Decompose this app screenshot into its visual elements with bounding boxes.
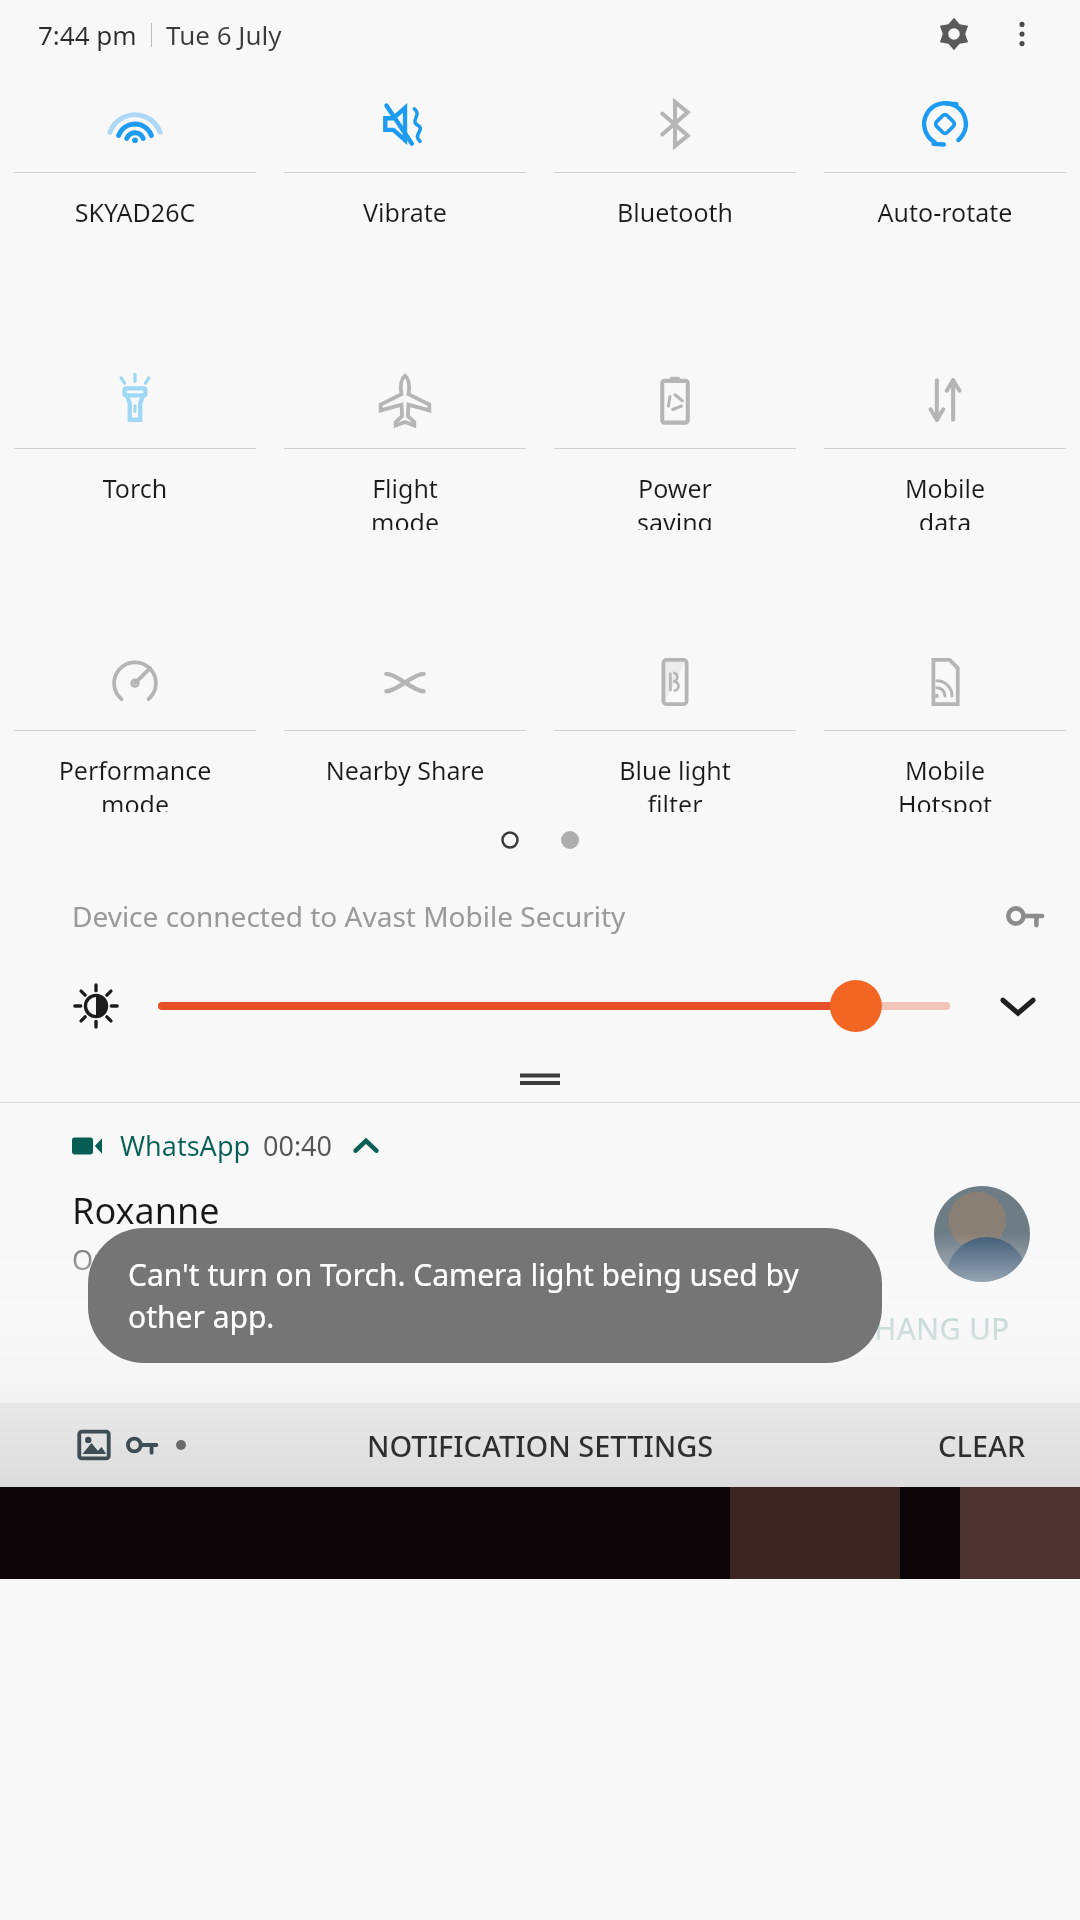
button[interactable]: Mobile Hotspot [810, 634, 1080, 812]
button[interactable]: Device connected to Avast Mobile Securit… [0, 882, 1080, 950]
staticText: WhatsApp [120, 1127, 251, 1164]
staticText: Roxanne [72, 1186, 220, 1235]
staticText: 7:44 pm [38, 17, 137, 52]
button[interactable]: Vibrate [270, 76, 540, 248]
button[interactable]: CLEAR [924, 1416, 1040, 1475]
button[interactable]: SKYAD26C [0, 76, 270, 248]
staticText: Nearby Share [284, 753, 526, 787]
button[interactable]: Settings [926, 6, 982, 62]
staticText: HANG UP [874, 1308, 1010, 1349]
button[interactable]: Brightness [162, 971, 946, 1041]
staticText: Tue 6 July [166, 17, 282, 52]
staticText: NOTIFICATION SETTINGS [367, 1426, 714, 1465]
button[interactable]: Performance mode [0, 634, 270, 812]
staticText: SKYAD26C [14, 195, 256, 229]
button[interactable]: Expand brightness settings [986, 974, 1050, 1038]
staticText: Auto-rotate [824, 195, 1066, 229]
button[interactable]: Power saving [540, 352, 810, 530]
staticText: Flight mode [284, 471, 526, 530]
staticText: Power saving [554, 471, 796, 530]
staticText: 00:40 [263, 1127, 333, 1164]
staticText: Mobile Hotspot [824, 753, 1066, 812]
button[interactable]: Torch [0, 352, 270, 530]
button[interactable]: WhatsApp [0, 1127, 1080, 1164]
staticText: Device connected to Avast Mobile Securit… [72, 897, 1006, 935]
button[interactable]: Mobile data [810, 352, 1080, 530]
button[interactable]: Blue light filter [540, 634, 810, 812]
staticText: Vibrate [284, 195, 526, 229]
button[interactable]: NOTIFICATION SETTINGS [349, 1416, 732, 1475]
button[interactable]: Nearby Share [270, 634, 540, 812]
staticText: Performance mode [14, 753, 256, 812]
staticText: Blue light filter [554, 753, 796, 812]
staticText: Mobile data [824, 471, 1066, 530]
button[interactable]: Flight mode [270, 352, 540, 530]
button[interactable]: HANG UP [866, 1300, 1018, 1357]
staticText: Ongoing video call [72, 1241, 308, 1278]
button[interactable]: Auto-rotate [810, 76, 1080, 248]
button[interactable]: More options [994, 6, 1050, 62]
button[interactable]: Bluetooth [540, 76, 810, 248]
staticText: Bluetooth [554, 195, 796, 229]
staticText: CLEAR [938, 1426, 1026, 1465]
staticText: Torch [14, 471, 256, 505]
staticText: Can't turn on Torch. Camera light being … [128, 1254, 842, 1337]
